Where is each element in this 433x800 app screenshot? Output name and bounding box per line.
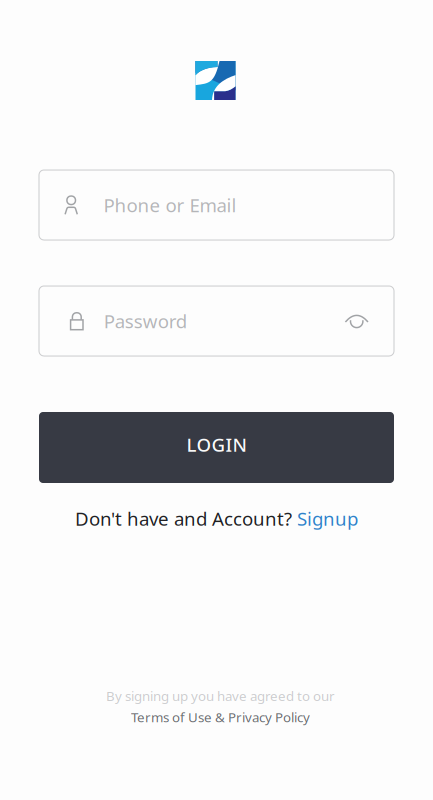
button[interactable]: Don't have and Account?	[75, 506, 358, 531]
staticText: Terms of Use & Privacy Policy	[131, 708, 310, 726]
staticText: Don't have and Account?	[75, 506, 297, 531]
button[interactable]: Terms of Use & Privacy Policy	[131, 708, 310, 726]
staticText: By signing up you have agreed to our	[106, 687, 335, 705]
staticText: Signup	[297, 506, 358, 531]
button[interactable]: Show password	[345, 313, 394, 329]
staticText: LOGIN	[186, 432, 246, 457]
staticText: Password	[104, 309, 187, 333]
button[interactable]: LOGIN	[39, 412, 394, 483]
staticText: Phone or Email	[104, 193, 237, 217]
